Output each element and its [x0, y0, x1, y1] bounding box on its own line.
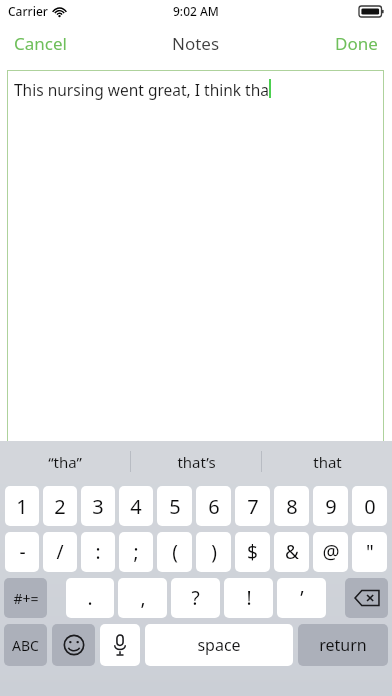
- button[interactable]: ?: [171, 578, 220, 618]
- staticText: 6: [208, 493, 220, 520]
- button[interactable]: ;: [119, 532, 153, 572]
- staticText: This nursing went great, I think tha: [14, 79, 269, 100]
- button[interactable]: return: [298, 624, 388, 666]
- staticText: Carrier: [8, 3, 48, 19]
- staticText: 1: [16, 493, 28, 520]
- button[interactable]: This nursing went great, I think tha: [7, 70, 384, 450]
- button[interactable]: :: [81, 532, 115, 572]
- staticText: 0: [364, 493, 376, 520]
- staticText: !: [246, 585, 252, 611]
- button[interactable]: ABC: [4, 624, 47, 666]
- staticText: -: [19, 539, 26, 565]
- button[interactable]: space: [145, 624, 293, 666]
- button[interactable]: -: [5, 532, 39, 572]
- staticText: that: [313, 452, 342, 472]
- staticText: return: [319, 634, 367, 656]
- staticText: ?: [191, 585, 200, 611]
- staticText: ’: [300, 585, 304, 611]
- button[interactable]: ): [196, 532, 231, 572]
- button[interactable]: ": [352, 532, 387, 572]
- staticText: ": [366, 539, 374, 565]
- staticText: :: [95, 539, 101, 565]
- button[interactable]: 4: [119, 486, 153, 526]
- button[interactable]: &: [274, 532, 309, 572]
- button[interactable]: that’s: [131, 441, 261, 482]
- button[interactable]: 2: [43, 486, 77, 526]
- button[interactable]: 0: [352, 486, 387, 526]
- staticText: 9: [325, 493, 337, 520]
- button[interactable]: 8: [274, 486, 309, 526]
- staticText: 5: [169, 493, 181, 520]
- button[interactable]: Backspace: [345, 578, 388, 618]
- staticText: 3: [92, 493, 104, 520]
- button[interactable]: “tha”: [0, 441, 130, 482]
- button[interactable]: 7: [235, 486, 270, 526]
- staticText: $: [247, 539, 258, 565]
- button[interactable]: 1: [5, 486, 39, 526]
- staticText: /: [56, 539, 64, 565]
- button[interactable]: $: [235, 532, 270, 572]
- button[interactable]: 3: [81, 486, 115, 526]
- button[interactable]: 6: [196, 486, 231, 526]
- button[interactable]: 5: [157, 486, 192, 526]
- staticText: ): [211, 539, 217, 565]
- button[interactable]: !: [224, 578, 273, 618]
- button[interactable]: that: [262, 441, 392, 482]
- button[interactable]: Dictation: [100, 624, 140, 666]
- staticText: Cancel: [14, 32, 67, 55]
- staticText: 2: [54, 493, 66, 520]
- button[interactable]: Done: [321, 26, 392, 61]
- staticText: 9:02 AM: [173, 3, 219, 19]
- staticText: 8: [286, 493, 298, 520]
- staticText: Notes: [172, 32, 220, 55]
- button[interactable]: ,: [118, 578, 167, 618]
- staticText: ;: [133, 539, 139, 565]
- button[interactable]: 9: [313, 486, 348, 526]
- button[interactable]: /: [43, 532, 77, 572]
- button[interactable]: (: [157, 532, 192, 572]
- button[interactable]: ’: [277, 578, 326, 618]
- staticText: space: [197, 634, 241, 656]
- staticText: Done: [335, 32, 378, 55]
- button[interactable]: #+=: [4, 578, 47, 618]
- staticText: &: [285, 539, 299, 565]
- staticText: “tha”: [48, 452, 82, 472]
- staticText: .: [87, 585, 93, 611]
- staticText: 4: [130, 493, 142, 520]
- staticText: @: [322, 539, 340, 565]
- button[interactable]: @: [313, 532, 348, 572]
- staticText: that’s: [177, 452, 216, 472]
- staticText: (: [172, 539, 178, 565]
- button[interactable]: .: [66, 578, 114, 618]
- staticText: #+=: [13, 589, 39, 608]
- button[interactable]: Emoji: [52, 624, 95, 666]
- button[interactable]: Cancel: [0, 26, 81, 61]
- staticText: ABC: [12, 636, 39, 655]
- staticText: ,: [140, 585, 146, 611]
- staticText: 7: [247, 493, 259, 520]
